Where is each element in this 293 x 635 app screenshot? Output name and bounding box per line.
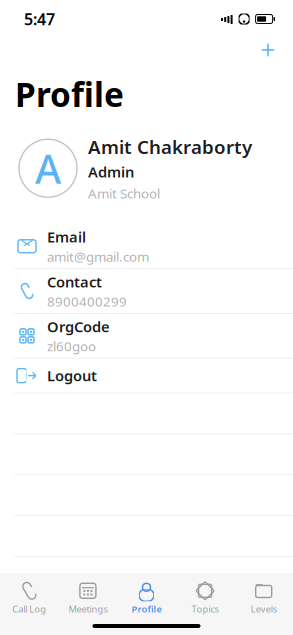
button[interactable]: Contact [0, 269, 293, 314]
staticText: Profile [15, 72, 124, 116]
staticText: OrgCode [47, 317, 110, 336]
button[interactable]: Meetings [59, 575, 117, 615]
staticText: amit@gmail.com [47, 248, 149, 265]
button[interactable]: Profile [117, 575, 176, 615]
staticText: Logout [47, 366, 97, 385]
staticText: 8900400299 [47, 292, 127, 310]
button[interactable]: OrgCode [0, 314, 293, 359]
staticText: A [35, 142, 61, 195]
button[interactable]: Levels [234, 575, 293, 615]
staticText: Topics [192, 603, 219, 615]
staticText: Call Log [12, 603, 46, 615]
staticText: zl60goo [47, 337, 96, 355]
button[interactable]: Topics [176, 575, 234, 615]
staticText: Amit School [88, 184, 160, 202]
button[interactable]: Logout [0, 359, 293, 393]
staticText: 5:47 [24, 8, 55, 30]
staticText: Meetings [68, 603, 107, 615]
staticText: Profile [131, 603, 161, 615]
button[interactable]: Call Log [0, 575, 59, 615]
staticText: Contact [47, 272, 102, 291]
staticText: Amit Chakraborty [88, 134, 252, 159]
staticText: Admin [88, 162, 134, 182]
button[interactable]: Email [0, 224, 293, 269]
staticText: Email [47, 227, 86, 247]
button[interactable]: Add [251, 36, 285, 64]
staticText: Levels [251, 603, 277, 615]
